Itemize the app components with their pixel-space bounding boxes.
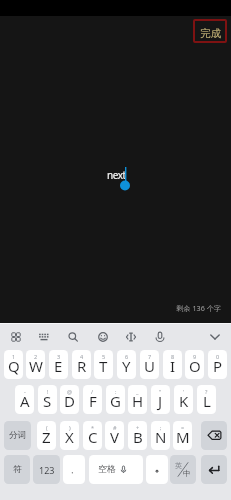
staticText: 空格 [98, 464, 116, 475]
staticText: 5 [102, 353, 106, 360]
button[interactable]: / [83, 385, 102, 414]
staticText: ! [47, 388, 49, 395]
button[interactable]: 空格 [89, 455, 143, 484]
staticText: ( [46, 424, 48, 431]
button[interactable]: 1 [4, 350, 23, 379]
button[interactable]: Backspace [201, 421, 227, 450]
button[interactable]: 0 [208, 350, 227, 379]
staticText: C [88, 427, 98, 447]
staticText: @ [67, 388, 72, 395]
button[interactable]: Keyboard [33, 326, 55, 348]
staticText: N [155, 427, 167, 447]
button[interactable]: @ [60, 385, 79, 414]
button[interactable]: 3 [49, 350, 68, 379]
button[interactable]: " [151, 385, 170, 414]
staticText: 1 [12, 353, 16, 360]
staticText: G [110, 391, 121, 411]
staticText: 3 [57, 353, 61, 360]
button[interactable]: Voice input [149, 326, 171, 348]
button[interactable] [146, 455, 168, 484]
staticText: 8 [171, 353, 175, 360]
staticText: 中 [183, 469, 191, 478]
button[interactable]: # [105, 421, 124, 450]
button[interactable]: ' [174, 385, 193, 414]
staticText: = [181, 424, 185, 431]
button[interactable]: 2 [26, 350, 45, 379]
staticText: Q [8, 356, 20, 376]
button[interactable]: 符 [4, 455, 30, 484]
button[interactable]: Switch language [170, 455, 196, 484]
staticText: H [132, 391, 144, 411]
staticText: # [113, 424, 117, 431]
staticText: R [77, 356, 87, 376]
staticText: ? [205, 388, 208, 395]
button[interactable]: 分词 [4, 421, 31, 450]
staticText: E [54, 356, 63, 376]
staticText: ; [160, 424, 162, 431]
staticText: 123 [39, 464, 55, 476]
staticText: 6 [125, 353, 129, 360]
staticText: 符 [13, 464, 22, 475]
staticText: 完成 [200, 27, 221, 40]
button[interactable]: 7 [140, 350, 159, 379]
staticText: Y [122, 356, 131, 376]
staticText: ' [183, 388, 185, 395]
button[interactable]: ! [38, 385, 57, 414]
staticText: B [133, 427, 143, 447]
button[interactable]: Emoji [92, 326, 114, 348]
button[interactable]: 4 [72, 350, 91, 379]
staticText: 4 [80, 353, 84, 360]
button[interactable]: Enter [201, 455, 227, 484]
button[interactable]: Layouts [5, 326, 27, 348]
staticText: P [213, 356, 223, 376]
staticText: A [20, 391, 30, 411]
staticText: 7 [148, 353, 152, 360]
staticText: 2 [34, 353, 38, 360]
staticText: F [89, 391, 97, 411]
staticText: J [158, 391, 163, 411]
staticText: T [99, 356, 108, 376]
staticText: * [91, 424, 95, 431]
staticText: X [65, 427, 74, 447]
button[interactable]: - [15, 385, 34, 414]
staticText: I [170, 356, 176, 376]
button[interactable]: 8 [163, 350, 182, 379]
button[interactable]: Search [62, 326, 84, 348]
button[interactable]: Move cursor [120, 326, 142, 348]
staticText: " [159, 388, 162, 395]
button[interactable]: ? [197, 385, 216, 414]
staticText: Z [42, 427, 51, 447]
staticText: W [29, 356, 43, 376]
button[interactable]: 123 [33, 455, 60, 484]
staticText: : [115, 388, 117, 395]
button[interactable]: : [106, 385, 125, 414]
staticText: U [144, 356, 155, 376]
button[interactable]: _ [128, 385, 147, 414]
staticText: M [176, 427, 190, 447]
button[interactable]: 9 [185, 350, 204, 379]
staticText: / [91, 388, 94, 395]
button[interactable]: ， [63, 455, 85, 484]
staticText: _ [136, 388, 139, 395]
staticText: O [189, 356, 201, 376]
staticText: + [136, 424, 140, 431]
button[interactable]: 完成 [193, 19, 227, 43]
staticText: 剩余 136 个字 [0, 303, 221, 313]
button[interactable]: ; [151, 421, 170, 450]
staticText: 0 [216, 353, 220, 360]
staticText: 分词 [9, 430, 26, 441]
staticText: D [64, 391, 75, 411]
staticText: 英 [175, 461, 182, 470]
staticText: L [203, 391, 211, 411]
staticText: next [107, 168, 126, 182]
staticText: S [43, 391, 52, 411]
button[interactable]: Hide keyboard [204, 326, 226, 348]
button[interactable]: ) [60, 421, 79, 450]
button[interactable]: 5 [94, 350, 113, 379]
button[interactable]: * [83, 421, 102, 450]
button[interactable]: = [173, 421, 192, 450]
button[interactable]: ( [37, 421, 56, 450]
button[interactable]: + [128, 421, 147, 450]
button[interactable]: 6 [117, 350, 136, 379]
staticText: K [179, 391, 189, 411]
